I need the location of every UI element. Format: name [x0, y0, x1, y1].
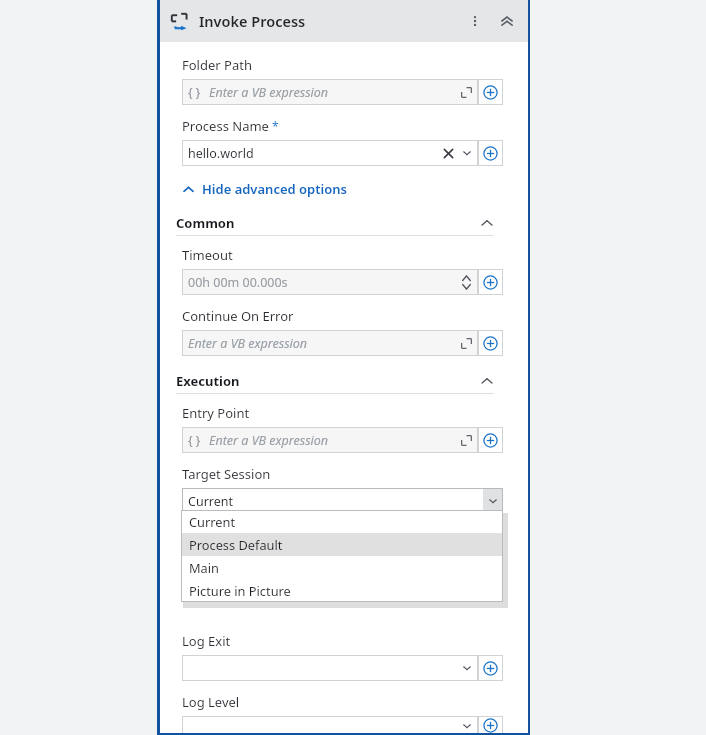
staticText: Target Session [182, 465, 271, 483]
button[interactable]: Collapse [494, 8, 520, 34]
staticText: Process Name [182, 117, 269, 135]
staticText: Common [176, 214, 235, 232]
button[interactable]: Add [478, 269, 503, 295]
button[interactable]: Current [182, 488, 503, 514]
button[interactable] [182, 716, 478, 735]
button[interactable]: Add [478, 79, 503, 105]
button[interactable]: Execution [176, 369, 502, 393]
staticText: Process Default [189, 536, 283, 553]
staticText: Enter a VB expression [209, 84, 461, 101]
button[interactable]: Enter a VB expression [182, 330, 478, 356]
button[interactable]: Add [478, 427, 503, 453]
button[interactable]: More options [462, 8, 488, 34]
staticText: Continue On Error [182, 307, 294, 325]
button[interactable]: Add [478, 140, 503, 166]
staticText: Picture in Picture [189, 582, 291, 599]
button[interactable]: Clear [441, 146, 455, 160]
button[interactable]: Current [181, 510, 503, 533]
button[interactable]: Main [181, 556, 503, 579]
button[interactable]: Add [478, 655, 503, 681]
staticText: { } [188, 432, 201, 448]
button[interactable] [182, 655, 478, 681]
staticText: 00h 00m 00.000s [188, 274, 461, 291]
staticText: Folder Path [182, 56, 252, 74]
staticText: Enter a VB expression [209, 432, 461, 449]
staticText: Main [189, 559, 219, 576]
button[interactable]: Process Default [181, 533, 503, 556]
staticText: * [272, 118, 279, 134]
staticText: Log Level [182, 693, 240, 711]
staticText: Hide advanced options [202, 180, 347, 198]
staticText: Log Exit [182, 632, 231, 650]
staticText: Execution [176, 372, 240, 390]
button[interactable]: 00h 00m 00.000s [182, 269, 478, 295]
button[interactable]: Add [478, 330, 503, 356]
staticText: Enter a VB expression [188, 335, 461, 352]
button[interactable]: Hide advanced options [182, 180, 347, 198]
button[interactable]: Picture in Picture [181, 579, 503, 602]
staticText: Entry Point [182, 404, 250, 422]
staticText: Current [188, 493, 483, 510]
staticText: Timeout [182, 246, 233, 264]
button[interactable]: Add [478, 716, 503, 735]
staticText: Current [189, 513, 236, 530]
button[interactable]: Common [176, 211, 502, 235]
other: Invoke Process icon [168, 10, 190, 32]
staticText: hello.world [188, 145, 441, 162]
button[interactable]: { } [182, 427, 478, 453]
button[interactable]: hello.world [182, 140, 478, 166]
staticText: { } [188, 84, 201, 100]
staticText: Invoke Process [199, 11, 306, 31]
button[interactable]: { } [182, 79, 478, 105]
